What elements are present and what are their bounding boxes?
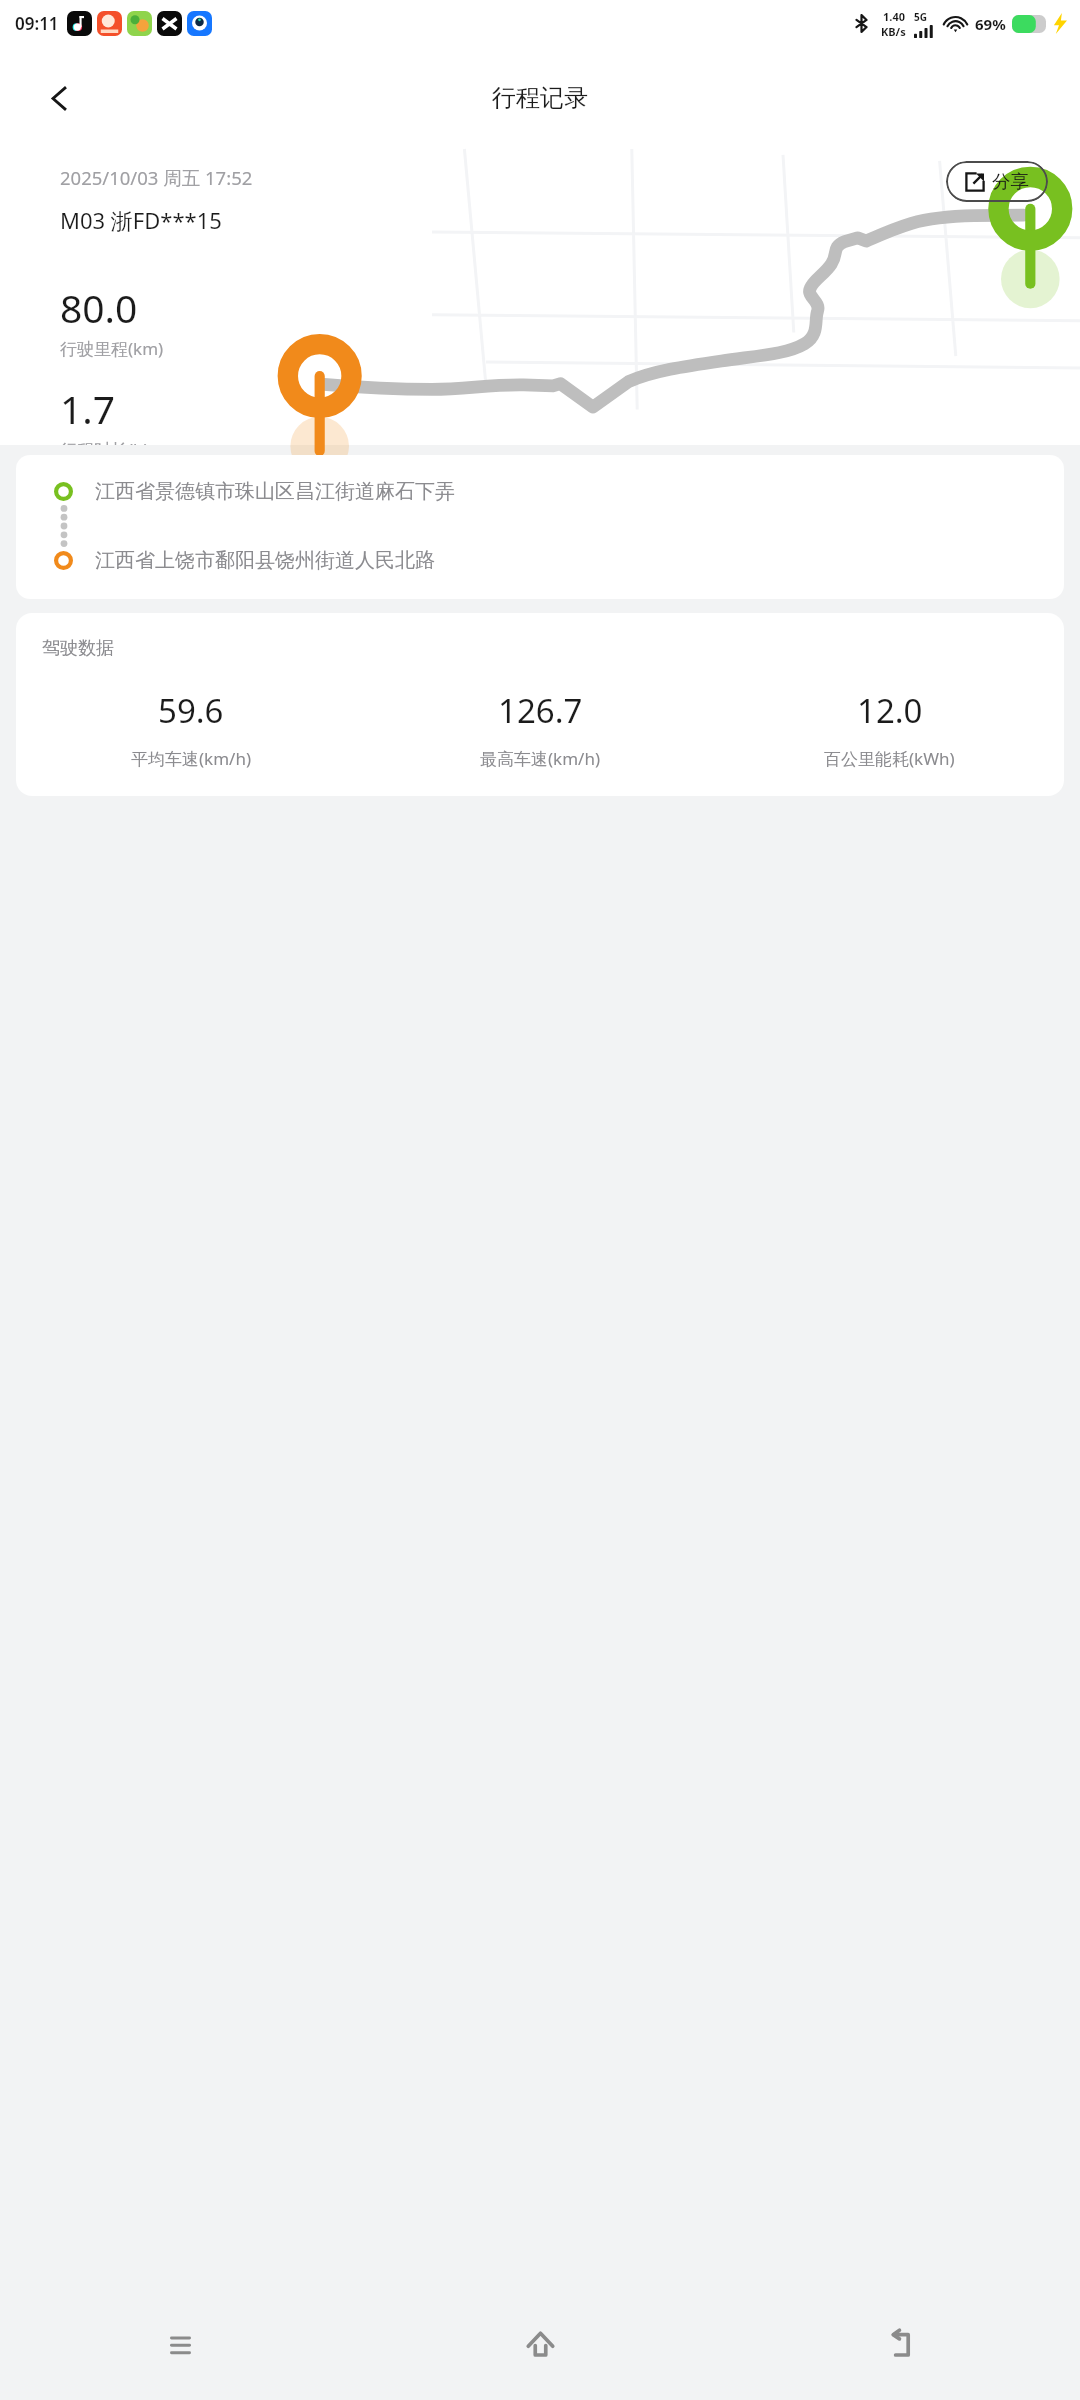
staticText: 平均车速(km/h): [131, 747, 252, 770]
staticText: M03 浙FD***15: [60, 205, 222, 235]
button[interactable]: 驾驶数据: [16, 613, 1064, 796]
button[interactable]: Home: [360, 2288, 720, 2400]
staticText: KB/s: [881, 24, 906, 39]
staticText: 驾驶数据: [42, 637, 114, 660]
staticText: 百公里能耗(kWh): [824, 747, 955, 770]
staticText: 分享: [992, 170, 1029, 193]
staticText: 最高车速(km/h): [480, 747, 601, 770]
staticText: 行程记录: [492, 83, 588, 113]
staticText: 5G: [914, 10, 927, 24]
staticText: 江西省上饶市鄱阳县饶州街道人民北路: [95, 548, 435, 573]
staticText: 12.0: [857, 688, 923, 733]
staticText: 江西省景德镇市珠山区昌江街道麻石下弄: [95, 479, 455, 504]
button[interactable]: 分享: [946, 161, 1048, 202]
staticText: 69%: [975, 14, 1006, 34]
staticText: 行驶里程(km): [60, 337, 164, 360]
button[interactable]: Back: [720, 2288, 1080, 2400]
staticText: 2025/10/03 周五 17:52: [60, 165, 253, 190]
staticText: 80.0: [60, 281, 138, 334]
button[interactable]: Recents: [0, 2288, 360, 2400]
button[interactable]: 江西省景德镇市珠山区昌江街道麻石下弄: [16, 455, 1064, 599]
staticText: 1.40: [883, 9, 905, 24]
button[interactable]: Back: [30, 69, 88, 127]
staticText: 126.7: [498, 688, 583, 733]
staticText: 1.7: [60, 382, 116, 435]
staticText: 09:11: [15, 12, 59, 35]
staticText: 行程时长(h): [60, 438, 149, 445]
staticText: 59.6: [158, 688, 224, 733]
